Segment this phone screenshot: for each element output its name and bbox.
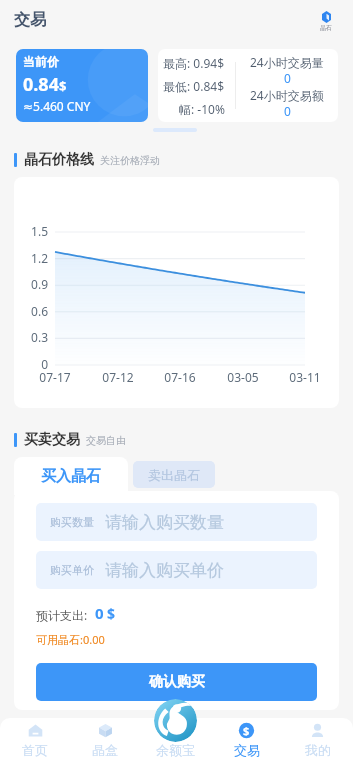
staticText: 请输入购买数量 xyxy=(105,512,224,533)
staticText: 最低: 0.84$ xyxy=(163,78,225,94)
staticText: $ xyxy=(107,604,116,623)
button[interactable]: 购买单价 xyxy=(36,551,317,589)
staticText: 交易 xyxy=(14,10,46,30)
button[interactable]: 余额宝 xyxy=(154,699,197,742)
staticText: $ xyxy=(243,723,250,738)
button[interactable]: 当前价 xyxy=(16,49,148,122)
staticText: 可用晶石:0.00 xyxy=(36,632,105,647)
button[interactable]: 购买数量 xyxy=(36,503,317,541)
staticText: 24小时交易额 xyxy=(250,87,324,103)
staticText: 07-16 xyxy=(158,369,202,385)
staticText: 我的 xyxy=(305,742,331,758)
staticText: 预计支出: xyxy=(36,607,88,623)
staticText: 1.2 xyxy=(17,250,48,266)
button[interactable]: 余额宝 xyxy=(140,718,211,762)
staticText: 买卖交易 xyxy=(24,431,80,449)
button[interactable]: 卖出晶石 xyxy=(133,461,215,488)
button[interactable]: 我的 xyxy=(282,718,353,762)
staticText: 晶盒 xyxy=(92,742,118,758)
staticText: 07-12 xyxy=(96,369,140,385)
button[interactable]: 首页 xyxy=(0,718,70,762)
button[interactable]: 晶石 xyxy=(313,11,339,33)
staticText: 0 xyxy=(284,70,291,86)
staticText: 余额宝 xyxy=(156,742,195,758)
staticText: $ xyxy=(59,77,67,95)
staticText: 1.5 xyxy=(17,223,48,239)
staticText: 03-05 xyxy=(221,369,265,385)
staticText: 晶石 xyxy=(320,24,332,32)
staticText: 首页 xyxy=(22,742,48,758)
staticText: 购买单价 xyxy=(50,563,94,577)
staticText: 0 xyxy=(17,356,48,372)
staticText: 0.6 xyxy=(17,303,48,319)
staticText: 卖出晶石 xyxy=(148,467,200,483)
staticText: 最高: 0.94$ xyxy=(163,55,225,71)
staticText: 交易自由 xyxy=(86,434,126,447)
staticText: 请输入购买单价 xyxy=(105,560,224,581)
staticText: 0 xyxy=(95,603,104,623)
staticText: 确认购买 xyxy=(149,673,205,691)
staticText: 0.84 xyxy=(23,72,59,97)
staticText: ≈5.460 CNY xyxy=(23,98,91,114)
staticText: 买入晶石 xyxy=(41,467,101,486)
staticText: 03-11 xyxy=(283,369,327,385)
button[interactable]: 买入晶石 xyxy=(14,457,128,495)
staticText: 0.9 xyxy=(17,276,48,292)
staticText: 交易 xyxy=(234,742,260,758)
button[interactable]: $ xyxy=(211,718,282,762)
staticText: 0 xyxy=(284,103,291,119)
button[interactable]: 确认购买 xyxy=(36,663,317,701)
staticText: 当前价 xyxy=(23,54,59,69)
staticText: 07-17 xyxy=(33,369,77,385)
staticText: 购买数量 xyxy=(50,515,94,529)
staticText: 晶石价格线 xyxy=(24,151,94,169)
staticText: 24小时交易量 xyxy=(250,54,324,70)
staticText: 幅: -10% xyxy=(179,101,225,117)
staticText: 0.3 xyxy=(17,329,48,345)
button[interactable]: 晶盒 xyxy=(70,718,140,762)
staticText: 关注价格浮动 xyxy=(100,154,160,167)
